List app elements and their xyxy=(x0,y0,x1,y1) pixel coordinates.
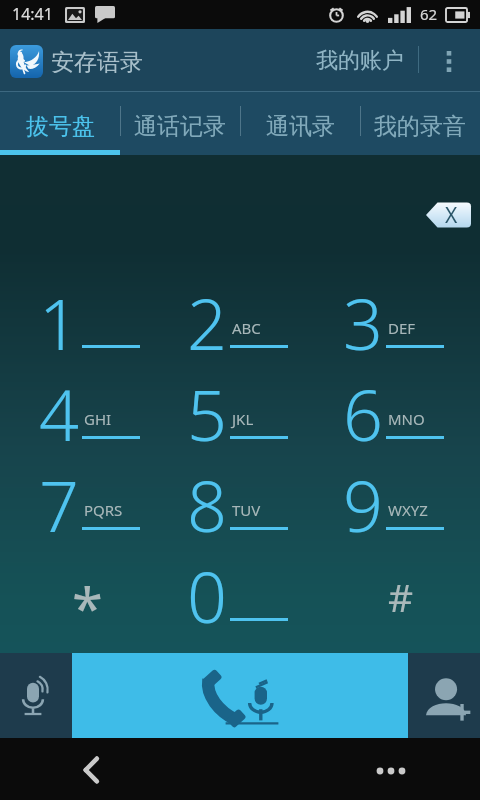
button[interactable]: Add contact xyxy=(408,653,480,738)
button[interactable]: 通讯录 xyxy=(240,91,360,155)
staticText: 9 xyxy=(343,457,383,552)
staticText: 安存语录 xyxy=(51,48,143,77)
staticText: 通讯录 xyxy=(266,112,335,141)
button[interactable]: Dial 3 xyxy=(314,284,466,375)
staticText: 62 xyxy=(420,4,438,24)
button[interactable]: Dial 6 xyxy=(314,375,466,466)
staticText: 6 xyxy=(343,366,383,461)
staticText: GHI xyxy=(84,409,112,429)
button[interactable]: More options xyxy=(430,29,467,91)
button[interactable]: 通话记录 xyxy=(120,91,240,155)
staticText: MNO xyxy=(388,409,425,429)
button[interactable]: Dial 7 xyxy=(10,466,162,557)
staticText: TUV xyxy=(232,500,261,520)
staticText: * xyxy=(72,569,103,645)
staticText: 8 xyxy=(187,457,227,552)
staticText: 5 xyxy=(187,366,227,461)
button[interactable]: App logo xyxy=(10,45,43,78)
staticText: 2 xyxy=(187,275,227,370)
staticText: JKL xyxy=(232,409,254,429)
button[interactable]: Call and record xyxy=(72,653,408,738)
staticText: 3 xyxy=(343,275,383,370)
staticText: 通话记录 xyxy=(134,112,226,141)
staticText: 7 xyxy=(39,457,79,552)
button[interactable]: Dial 4 xyxy=(10,375,162,466)
button[interactable]: Dial 5 xyxy=(158,375,310,466)
button[interactable]: 我的账户 xyxy=(305,29,415,91)
button[interactable]: Backspace xyxy=(424,202,471,228)
button[interactable]: Dial # xyxy=(343,561,480,652)
button[interactable]: Dial 0 xyxy=(158,557,310,648)
staticText: 14:41 xyxy=(12,3,53,25)
button[interactable]: Voice recording xyxy=(0,653,72,738)
staticText: ABC xyxy=(232,318,261,338)
staticText: X xyxy=(445,201,458,227)
button[interactable]: Dial 1 xyxy=(10,284,162,375)
button[interactable]: Dial * xyxy=(27,560,179,651)
staticText: 我的录音 xyxy=(374,112,466,141)
button[interactable]: Dial 2 xyxy=(158,284,310,375)
staticText: 1 xyxy=(39,275,79,370)
button[interactable]: Dial 9 xyxy=(314,466,466,557)
button[interactable]: Menu xyxy=(368,748,414,794)
staticText: DEF xyxy=(388,318,416,338)
staticText: 0 xyxy=(187,548,227,643)
staticText: WXYZ xyxy=(388,500,428,520)
button[interactable]: 拔号盘 xyxy=(0,91,120,155)
staticText: PQRS xyxy=(84,500,123,520)
staticText: 4 xyxy=(39,366,79,461)
button[interactable]: Back xyxy=(68,747,114,793)
button[interactable]: 我的录音 xyxy=(360,91,480,155)
button[interactable]: Dial 8 xyxy=(158,466,310,557)
staticText: 我的账户 xyxy=(316,47,404,75)
staticText: # xyxy=(388,570,414,623)
staticText: 拔号盘 xyxy=(26,112,95,141)
